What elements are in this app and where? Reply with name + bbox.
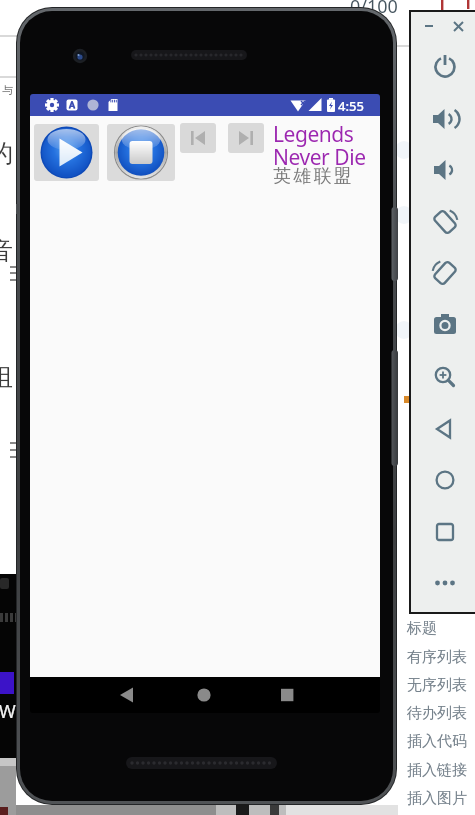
button[interactable] [228, 123, 264, 153]
staticText: 待办列表 [407, 704, 467, 723]
staticText: Legends Never Die [273, 120, 373, 171]
button[interactable] [263, 677, 380, 713]
button[interactable]: 插入链接 [407, 761, 467, 780]
button[interactable]: 标题 [407, 619, 437, 638]
button[interactable]: 有序列表 [407, 648, 467, 667]
staticText: 4:55 [338, 97, 364, 115]
staticText: We [0, 699, 26, 724]
staticText: 的 [0, 138, 13, 169]
button[interactable] [411, 532, 475, 584]
button[interactable]: 插入代码 [407, 732, 467, 751]
button[interactable] [146, 677, 263, 713]
button[interactable] [411, 480, 475, 532]
staticText: 音 [0, 235, 13, 266]
button[interactable] [107, 124, 175, 181]
staticText: 插入代码 [407, 732, 467, 751]
button[interactable] [411, 12, 475, 64]
staticText: 标题 [407, 619, 437, 638]
button[interactable] [411, 116, 475, 168]
button[interactable]: 待办列表 [407, 704, 467, 723]
staticText: 0/100 [350, 0, 398, 19]
staticText: 组 [0, 362, 13, 393]
staticText: 英雄联盟 [273, 165, 354, 188]
staticText: 插入图片 [407, 789, 467, 808]
button[interactable] [411, 168, 475, 220]
button[interactable] [411, 376, 475, 428]
button[interactable] [34, 124, 99, 181]
button[interactable] [180, 123, 216, 153]
button[interactable]: 无序列表 [407, 676, 467, 695]
staticText: 与 [2, 83, 13, 97]
button[interactable] [411, 324, 475, 376]
button[interactable] [30, 677, 146, 713]
button[interactable] [411, 272, 475, 324]
button[interactable] [411, 220, 475, 272]
button[interactable] [411, 64, 475, 116]
button[interactable] [411, 428, 475, 480]
staticText: 无序列表 [407, 676, 467, 695]
button[interactable]: 插入图片 [407, 789, 467, 808]
staticText: 有序列表 [407, 648, 467, 667]
staticText: 插入链接 [407, 761, 467, 780]
